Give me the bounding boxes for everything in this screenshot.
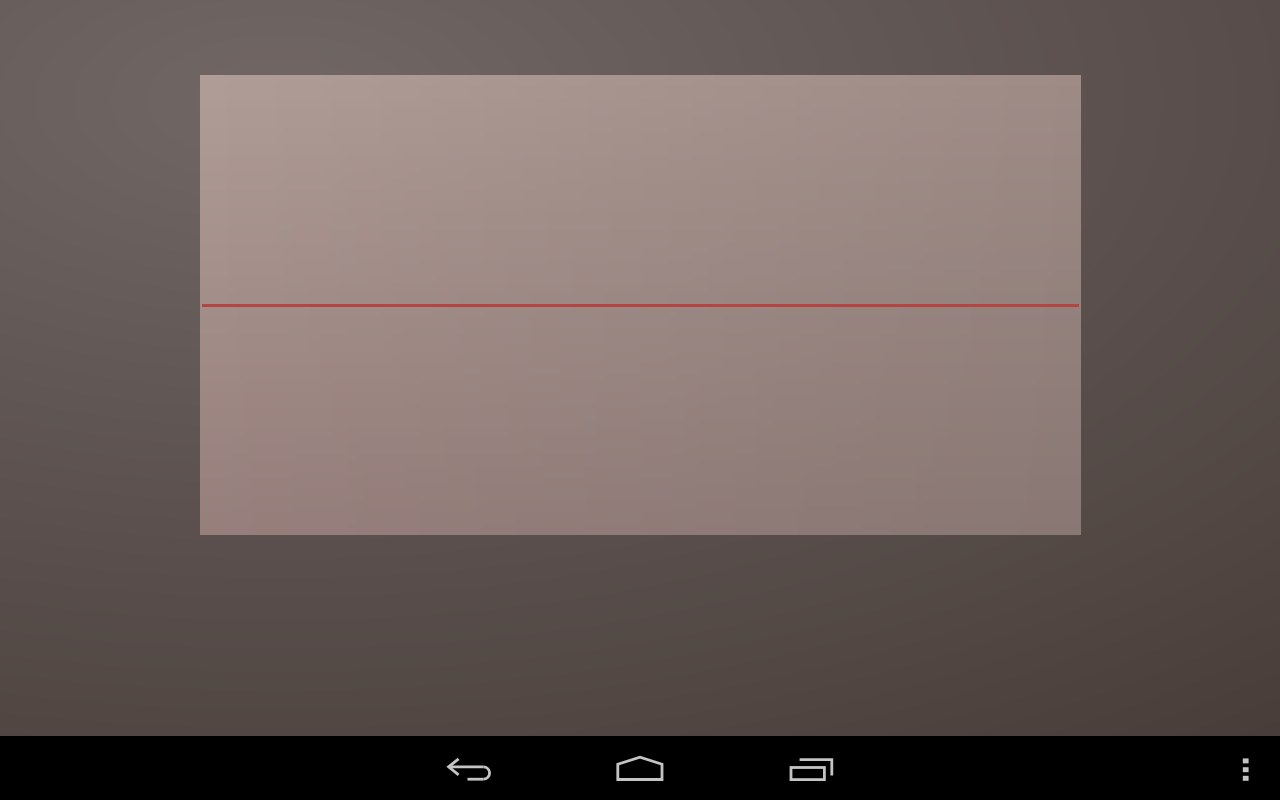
button[interactable]: Back <box>422 736 518 800</box>
button[interactable]: More options <box>1214 736 1278 800</box>
button[interactable]: Home <box>592 736 688 800</box>
button[interactable]: Recent apps <box>762 736 858 800</box>
button[interactable]: Preview <box>200 75 1081 535</box>
